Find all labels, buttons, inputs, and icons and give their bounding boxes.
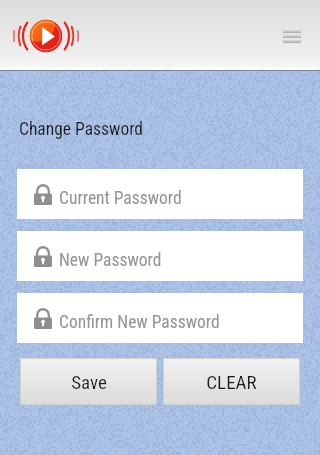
staticText: New Password — [59, 250, 162, 271]
button[interactable]: CLEAR — [163, 358, 300, 405]
button[interactable]: Save — [20, 358, 157, 405]
staticText: Save — [71, 371, 107, 393]
button[interactable]: New Password — [17, 231, 303, 281]
staticText: CLEAR — [206, 371, 257, 393]
button[interactable]: Confirm New Password — [17, 293, 303, 343]
staticText: Confirm New Password — [59, 312, 220, 333]
staticText: Current Password — [59, 188, 182, 209]
button[interactable]: Menu — [283, 30, 301, 43]
staticText: Change Password — [19, 119, 144, 140]
button[interactable]: Current Password — [17, 169, 303, 219]
